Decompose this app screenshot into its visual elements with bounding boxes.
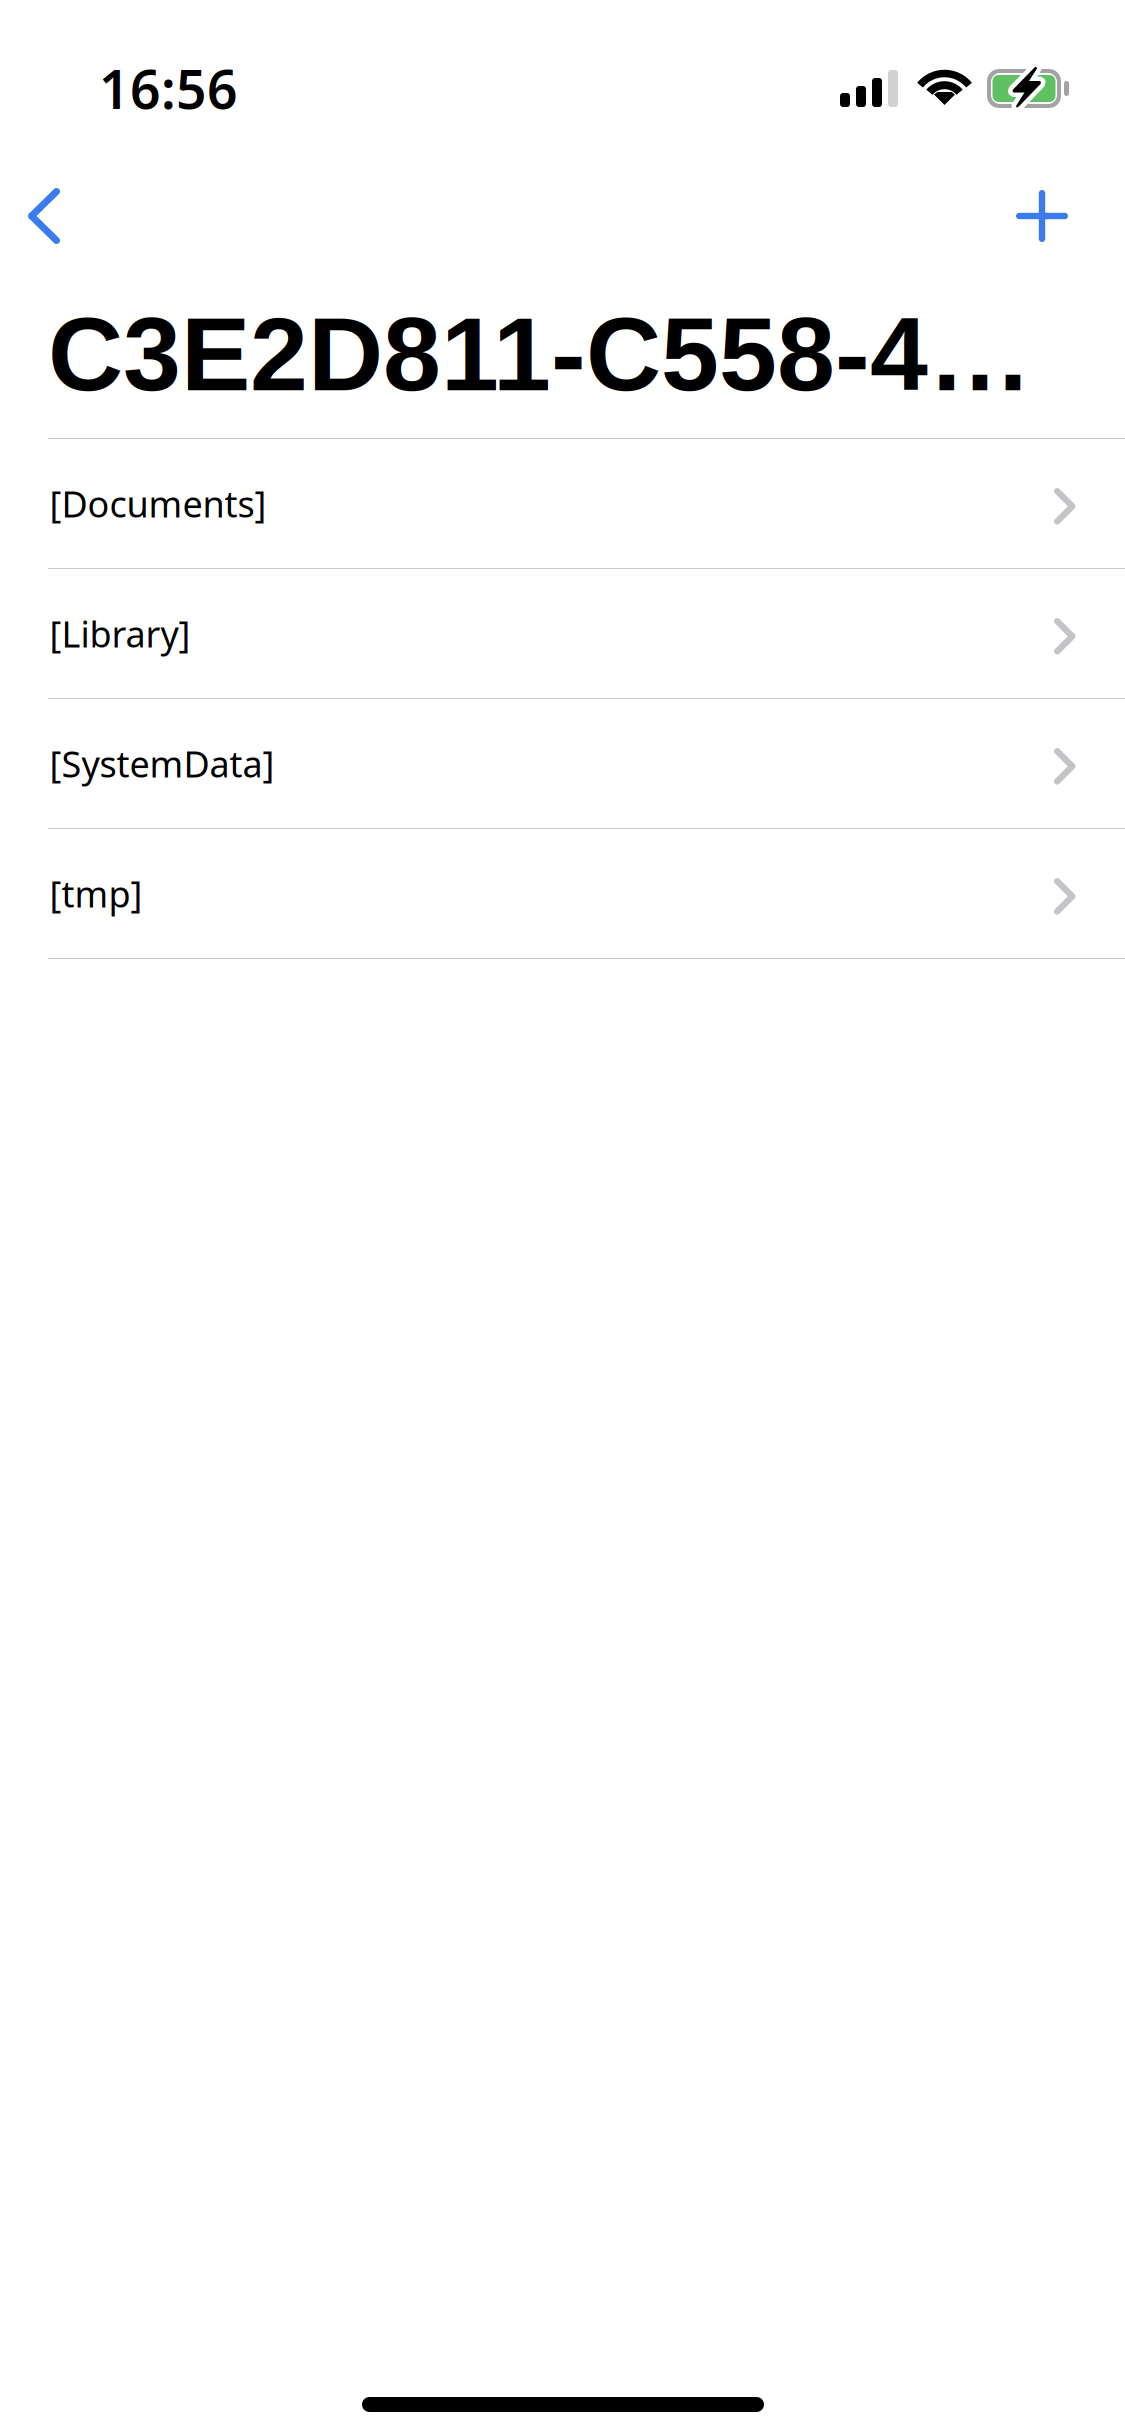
staticText: C3E2D811-C558-4…: [48, 296, 1032, 412]
staticText: [Documents]: [49, 480, 266, 527]
button[interactable]: [Documents]: [0, 439, 1125, 569]
button[interactable]: [Library]: [0, 569, 1125, 699]
staticText: 16:56: [99, 53, 238, 124]
staticText: [tmp]: [49, 870, 142, 917]
button[interactable]: [SystemData]: [0, 699, 1125, 829]
staticText: [Library]: [49, 610, 190, 657]
button[interactable]: Add: [992, 170, 1093, 262]
button[interactable]: [tmp]: [0, 829, 1125, 959]
staticText: [SystemData]: [49, 740, 274, 787]
button[interactable]: Back: [3, 170, 100, 262]
